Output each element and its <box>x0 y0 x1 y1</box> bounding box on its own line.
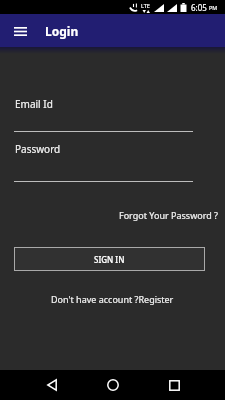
staticText: PM <box>209 4 218 11</box>
button[interactable]: SIGN IN <box>14 247 205 271</box>
staticText: 6:05 <box>191 2 207 13</box>
button[interactable] <box>37 370 67 400</box>
button[interactable] <box>98 370 128 400</box>
button[interactable] <box>159 370 189 400</box>
staticText: LTE <box>141 2 150 9</box>
button[interactable]: Don't have account ?Register <box>51 293 174 305</box>
button[interactable] <box>4 14 37 47</box>
staticText: SIGN IN <box>94 254 125 265</box>
staticText: Email Id <box>15 97 53 111</box>
staticText: Login <box>45 23 79 39</box>
button[interactable]: Forgot Your Password ? <box>119 209 218 221</box>
staticText: Password <box>15 142 61 156</box>
